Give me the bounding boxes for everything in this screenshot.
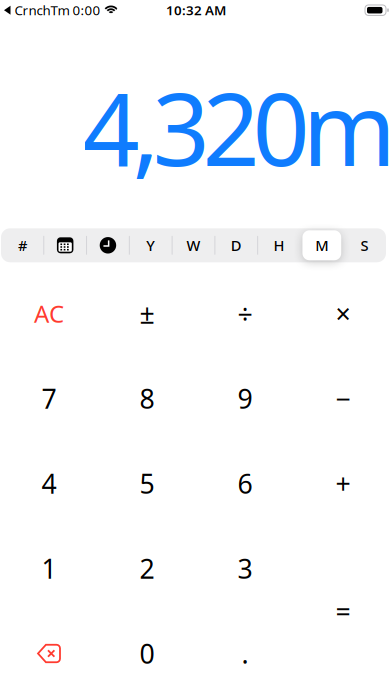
- staticText: H: [274, 236, 285, 255]
- button[interactable]: +: [294, 441, 392, 526]
- button[interactable]: .: [196, 611, 294, 696]
- staticText: W: [186, 236, 200, 255]
- button[interactable]: H: [258, 228, 300, 262]
- button[interactable]: 5: [98, 441, 196, 526]
- button[interactable]: =: [294, 526, 392, 696]
- button[interactable]: W: [172, 228, 215, 262]
- staticText: 5: [139, 466, 154, 501]
- staticText: .: [241, 636, 248, 671]
- button[interactable]: 3: [196, 526, 294, 611]
- button[interactable]: Clock: [87, 228, 129, 262]
- button[interactable]: ±: [98, 271, 196, 356]
- button[interactable]: 0: [98, 611, 196, 696]
- button[interactable]: AC: [0, 271, 98, 356]
- staticText: ÷: [237, 296, 252, 331]
- button[interactable]: #: [1, 228, 44, 262]
- staticText: =: [335, 593, 350, 629]
- button[interactable]: Calendar: [44, 228, 87, 262]
- staticText: +: [335, 466, 350, 501]
- button[interactable]: Back to CrnchTm: [4, 1, 117, 19]
- staticText: 0: [139, 636, 154, 671]
- button[interactable]: M: [300, 228, 343, 262]
- staticText: 4: [41, 466, 56, 501]
- button[interactable]: Y: [129, 228, 172, 262]
- button[interactable]: 8: [98, 356, 196, 441]
- button[interactable]: ÷: [196, 271, 294, 356]
- staticText: 2: [139, 551, 154, 586]
- button[interactable]: 6: [196, 441, 294, 526]
- staticText: ±: [139, 296, 154, 331]
- staticText: M: [315, 236, 328, 255]
- staticText: 7: [41, 381, 56, 416]
- button[interactable]: S: [343, 228, 386, 262]
- button[interactable]: 9: [196, 356, 294, 441]
- button[interactable]: D: [215, 228, 258, 262]
- staticText: Y: [146, 236, 155, 255]
- staticText: AC: [34, 298, 64, 329]
- staticText: 10:32 AM: [166, 1, 226, 19]
- button[interactable]: Delete: [0, 611, 98, 696]
- staticText: −: [335, 381, 350, 416]
- staticText: #: [18, 236, 27, 255]
- staticText: 9: [237, 381, 252, 416]
- staticText: 6: [237, 466, 252, 501]
- button[interactable]: ×: [294, 271, 392, 356]
- staticText: 1: [41, 551, 56, 586]
- staticText: 4,320m: [82, 61, 392, 194]
- button[interactable]: −: [294, 356, 392, 441]
- staticText: D: [231, 236, 242, 255]
- button[interactable]: 1: [0, 526, 98, 611]
- staticText: CrnchTm 0:00: [14, 1, 100, 19]
- button[interactable]: 2: [98, 526, 196, 611]
- button[interactable]: 4: [0, 441, 98, 526]
- staticText: ×: [335, 296, 350, 331]
- staticText: 8: [139, 381, 154, 416]
- button[interactable]: 7: [0, 356, 98, 441]
- staticText: S: [361, 236, 369, 255]
- staticText: 3: [237, 551, 252, 586]
